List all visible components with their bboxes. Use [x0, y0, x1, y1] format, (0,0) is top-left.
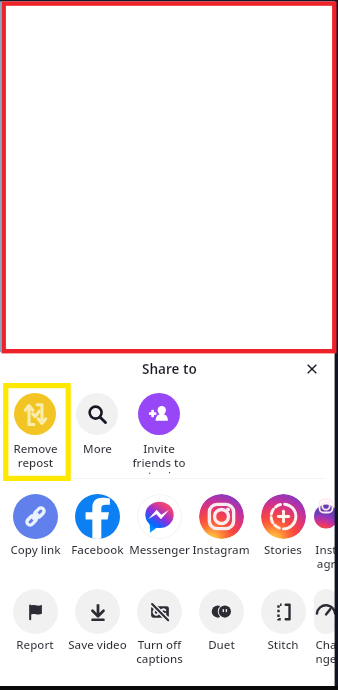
- staticText: Stitch: [267, 637, 299, 653]
- staticText: Instagram Direct: [314, 542, 338, 571]
- staticText: Report: [16, 637, 54, 653]
- staticText: Stories: [264, 542, 302, 558]
- button[interactable]: Change speed: [314, 589, 338, 666]
- button[interactable]: Stitch: [252, 589, 314, 653]
- staticText: Remove repost: [13, 441, 58, 470]
- button[interactable]: Facebook: [66, 494, 128, 558]
- staticText: Messenger: [129, 542, 190, 558]
- staticText: Save video: [68, 637, 127, 653]
- button[interactable]: Turn off captions: [128, 589, 190, 666]
- button[interactable]: Messenger: [128, 494, 190, 558]
- staticText: Instagram: [192, 542, 250, 558]
- staticText: Copy link: [10, 542, 61, 558]
- button[interactable]: Copy link: [4, 494, 66, 558]
- button[interactable]: Report: [4, 589, 66, 653]
- button[interactable]: Instagram: [190, 494, 252, 558]
- button[interactable]: More: [66, 393, 128, 457]
- staticText: Invite friends to get coins: [128, 441, 190, 474]
- staticText: More: [83, 441, 112, 457]
- staticText: Facebook: [71, 542, 124, 558]
- button[interactable]: Duet: [190, 589, 252, 653]
- button[interactable]: Remove repost: [4, 393, 66, 470]
- button[interactable]: Save video: [66, 589, 128, 653]
- staticText: Change speed: [314, 637, 338, 666]
- staticText: Duet: [208, 637, 235, 653]
- button[interactable]: Invite friends to get coins: [128, 393, 190, 474]
- staticText: Turn off captions: [136, 637, 183, 666]
- button[interactable]: Instagram Direct: [314, 494, 338, 571]
- staticText: Share to: [142, 360, 197, 378]
- button[interactable]: Close: [302, 359, 322, 379]
- button[interactable]: Stories: [252, 494, 314, 558]
